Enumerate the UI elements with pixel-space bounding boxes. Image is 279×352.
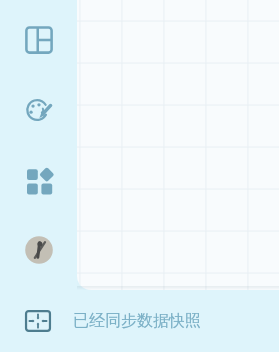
button[interactable]: Fit to screen [25, 308, 51, 334]
button[interactable]: Widgets [19, 160, 59, 200]
staticText: 已经同步数据快照 [73, 311, 201, 331]
button[interactable]: Account [19, 230, 59, 270]
button[interactable]: Theme [19, 90, 59, 130]
button[interactable]: Layout [19, 20, 59, 60]
button[interactable]: Fit to screen [0, 290, 279, 352]
